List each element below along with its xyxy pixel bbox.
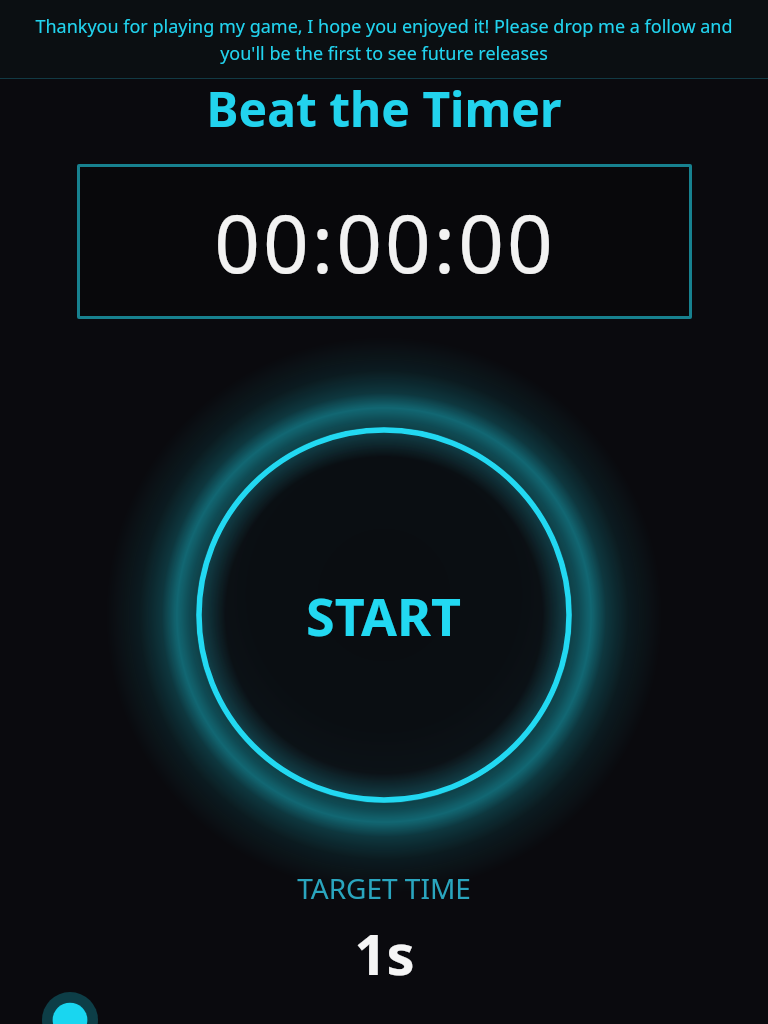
staticText: Beat the Timer [0, 76, 768, 141]
button[interactable]: 00:00:00 [77, 164, 692, 319]
button[interactable]: Thankyou for playing my game, I hope you… [0, 0, 768, 79]
staticText: Thankyou for playing my game, I hope you… [30, 14, 738, 65]
staticText: TARGET TIME [297, 869, 471, 907]
button[interactable]: Settings [42, 992, 98, 1024]
button[interactable]: START [196, 427, 572, 803]
staticText: 00:00:00 [214, 187, 556, 296]
staticText: 1s [354, 915, 415, 991]
staticText: START [306, 580, 462, 651]
